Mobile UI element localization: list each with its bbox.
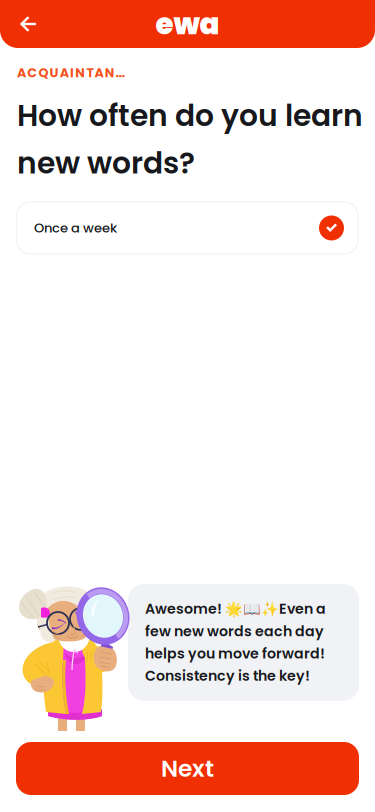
staticText: Next xyxy=(161,752,214,785)
button[interactable]: Back xyxy=(6,2,50,46)
staticText: Awesome! 🌟📖✨Even a few new words each da… xyxy=(145,599,326,686)
button[interactable]: Next xyxy=(16,742,359,795)
staticText: How often do you learn new words? xyxy=(17,95,363,184)
staticText: ACQUAINTANCE xyxy=(17,64,134,82)
button[interactable]: Once a week xyxy=(17,202,358,254)
staticText: Once a week xyxy=(34,219,117,237)
staticText: ewa xyxy=(155,3,219,45)
